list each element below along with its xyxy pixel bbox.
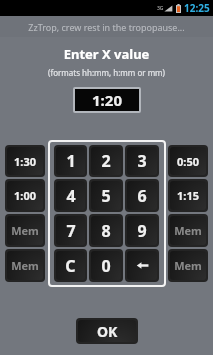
- staticText: 1:20: [92, 90, 122, 110]
- button[interactable]: 0:50: [168, 145, 208, 177]
- button[interactable]: 5: [89, 179, 123, 212]
- staticText: 6: [137, 185, 147, 207]
- staticText: 0: [101, 255, 111, 277]
- staticText: 3G: [157, 5, 164, 12]
- button[interactable]: 1: [54, 145, 87, 177]
- button[interactable]: 1:20: [75, 89, 139, 111]
- button[interactable]: 8: [89, 214, 123, 247]
- staticText: 8: [101, 220, 111, 242]
- staticText: Mem: [174, 223, 202, 238]
- staticText: 4: [66, 185, 76, 207]
- staticText: 3: [137, 150, 147, 172]
- staticText: 1:15: [177, 188, 199, 203]
- staticText: OK: [97, 322, 118, 341]
- staticText: Mem: [174, 258, 202, 273]
- button[interactable]: 2: [89, 145, 123, 177]
- button[interactable]: Mem: [168, 214, 208, 247]
- staticText: 7: [66, 220, 76, 242]
- button[interactable]: Mem: [5, 214, 45, 247]
- button[interactable]: Mem: [5, 249, 45, 282]
- staticText: 2: [101, 150, 111, 172]
- button[interactable]: OK: [78, 320, 136, 342]
- staticText: Enter X value: [0, 45, 213, 63]
- staticText: (formats hh:mm, h:mm or mm): [0, 67, 213, 78]
- staticText: Mem: [11, 223, 39, 238]
- button[interactable]: 1:00: [5, 179, 45, 212]
- button[interactable]: 3: [125, 145, 159, 177]
- staticText: 9: [137, 220, 147, 242]
- staticText: 1: [66, 150, 76, 172]
- button[interactable]: 6: [125, 179, 159, 212]
- staticText: 1:30: [14, 154, 36, 169]
- staticText: 0:50: [177, 154, 199, 169]
- staticText: 1:00: [14, 188, 36, 203]
- button[interactable]: 0: [89, 249, 123, 282]
- button[interactable]: 4: [54, 179, 87, 212]
- staticText: 5: [101, 185, 111, 207]
- button[interactable]: Backspace: [125, 249, 159, 282]
- button[interactable]: 1:15: [168, 179, 208, 212]
- button[interactable]: 9: [125, 214, 159, 247]
- staticText: C: [65, 255, 76, 277]
- staticText: 12:25: [184, 1, 210, 15]
- button[interactable]: 7: [54, 214, 87, 247]
- button[interactable]: C: [54, 249, 87, 282]
- button[interactable]: 1:30: [5, 145, 45, 177]
- button[interactable]: Mem: [168, 249, 208, 282]
- staticText: ZzTrop, crew rest in the tropopause...: [28, 21, 185, 33]
- staticText: Mem: [11, 258, 39, 273]
